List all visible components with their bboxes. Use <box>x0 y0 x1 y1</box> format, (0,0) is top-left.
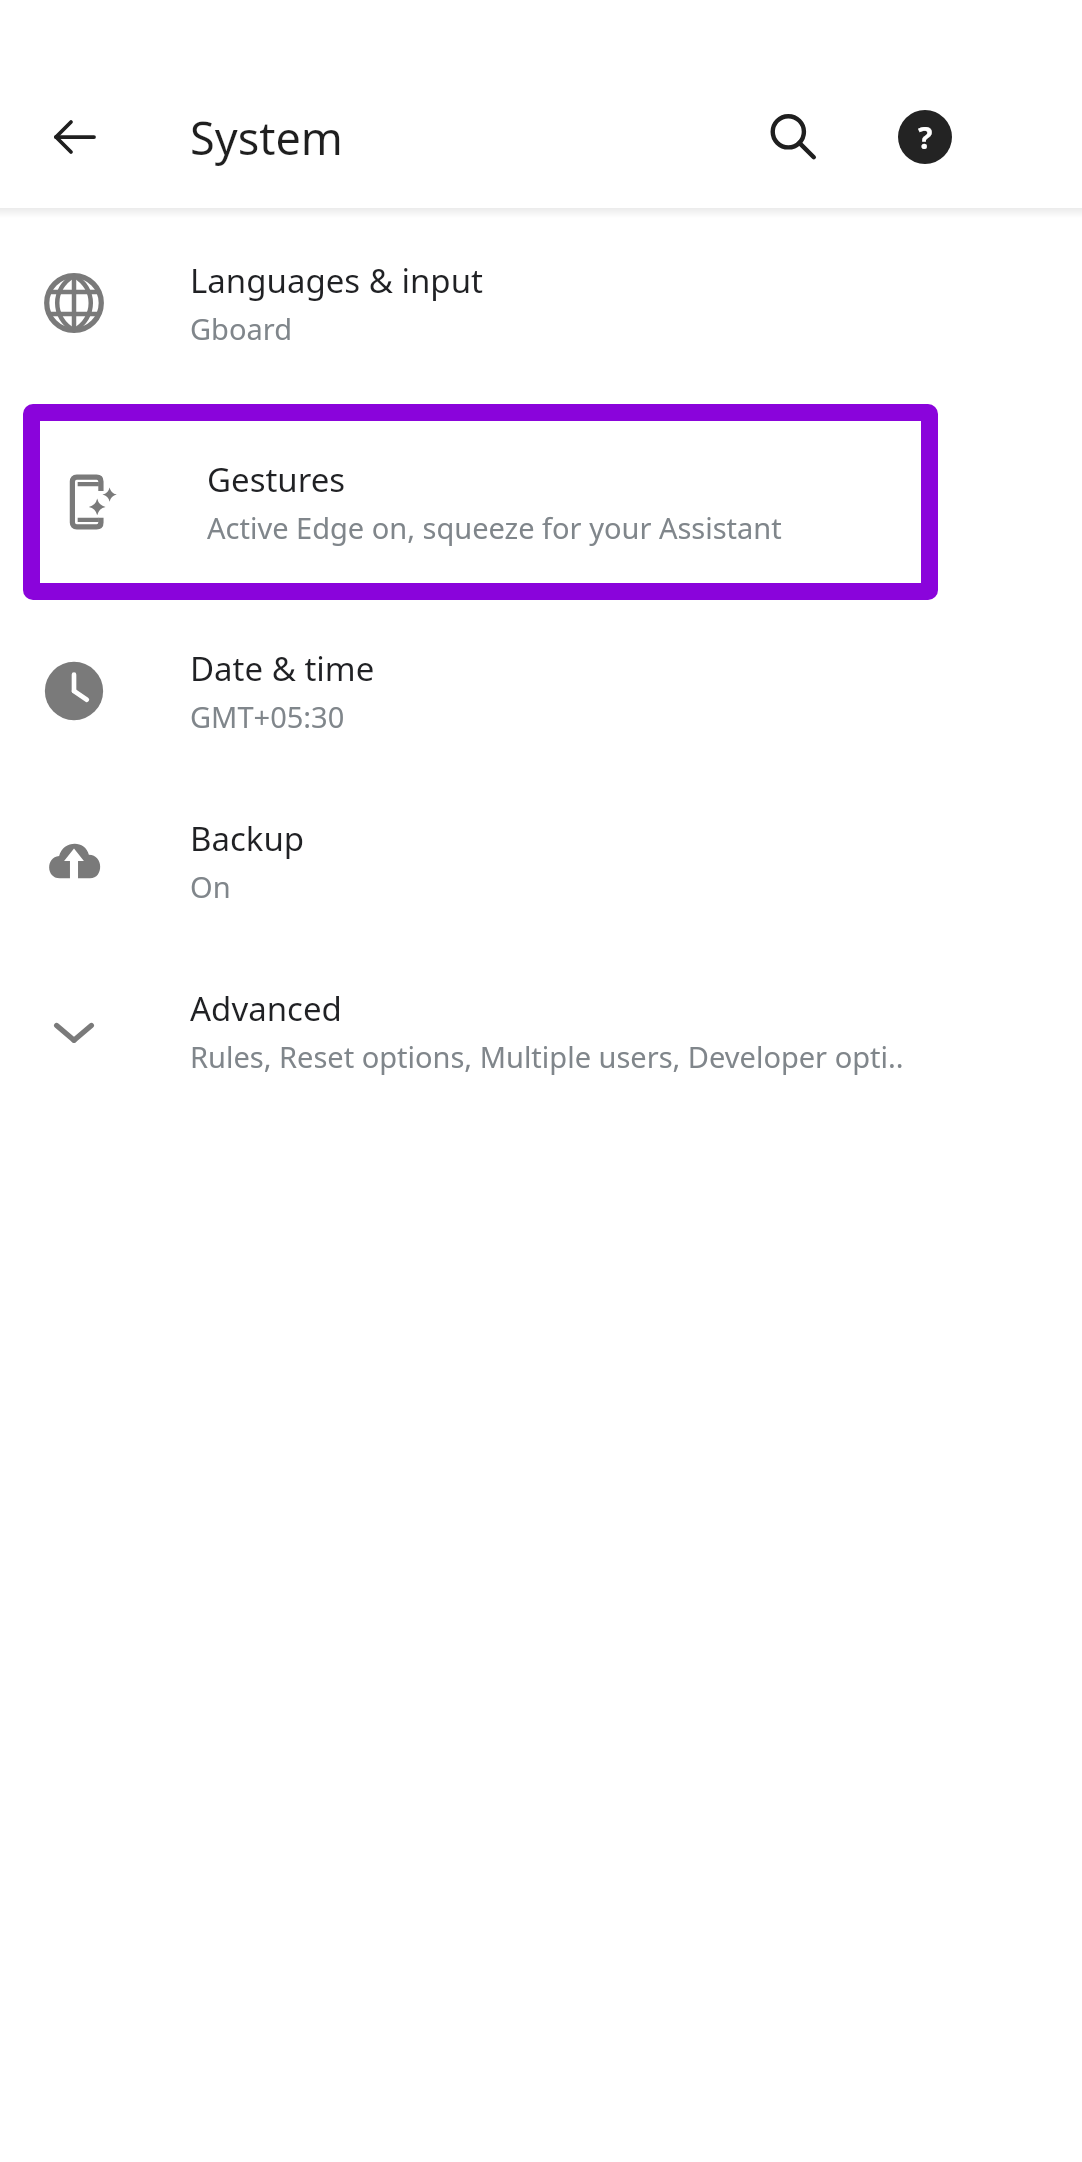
staticText: System <box>190 107 343 168</box>
button[interactable]: Advanced <box>0 946 1082 1116</box>
staticText: Backup <box>190 816 305 861</box>
button[interactable]: Backup <box>0 776 1082 946</box>
button[interactable]: Date & time <box>0 606 1082 776</box>
button[interactable]: Back <box>28 90 122 184</box>
staticText: On <box>190 867 231 906</box>
staticText: Languages & input <box>190 258 483 303</box>
button[interactable]: Search <box>746 90 840 184</box>
staticText: Gboard <box>190 309 292 348</box>
staticText: Gestures <box>207 457 346 502</box>
staticText: GMT+05:30 <box>190 697 345 736</box>
staticText: Date & time <box>190 646 375 691</box>
staticText: Active Edge on, squeeze for your Assista… <box>207 508 782 547</box>
staticText: ? <box>918 117 933 158</box>
button[interactable]: Languages & input <box>0 218 1082 388</box>
button[interactable]: Help <box>878 90 972 184</box>
staticText: Advanced <box>190 986 342 1031</box>
button[interactable]: Gestures <box>40 421 921 583</box>
staticText: Rules, Reset options, Multiple users, De… <box>190 1037 904 1076</box>
